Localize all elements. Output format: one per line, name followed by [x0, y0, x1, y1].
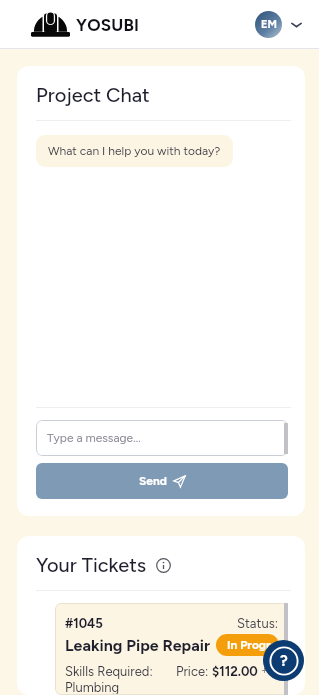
- button[interactable]: Help: [263, 640, 304, 681]
- staticText: Your Tickets: [36, 553, 147, 577]
- button[interactable]: YOSUBI: [31, 12, 140, 37]
- staticText: Send: [139, 474, 167, 488]
- staticText: Skills Required:: [65, 664, 153, 680]
- button[interactable]: #1045: [55, 603, 288, 695]
- staticText: EM: [261, 18, 277, 31]
- staticText: Project Chat: [36, 83, 150, 107]
- button[interactable]: Send: [36, 463, 288, 499]
- staticText: Plumbing: [65, 680, 120, 695]
- staticText: + tax: [261, 664, 279, 677]
- button[interactable]: EM: [255, 11, 302, 38]
- button[interactable]: Type a message...: [36, 420, 288, 456]
- staticText: Status:: [237, 616, 279, 632]
- staticText: Leaking Pipe Repair: [65, 636, 211, 655]
- staticText: YOSUBI: [76, 15, 140, 35]
- staticText: What can I help you with today?: [48, 144, 221, 158]
- staticText: Type a message...: [47, 431, 141, 445]
- staticText: In Progress: [227, 638, 268, 652]
- staticText: Price:: [176, 664, 212, 680]
- staticText: #1045: [65, 616, 103, 632]
- button[interactable]: Info: [156, 558, 171, 573]
- staticText: $112.00: [212, 664, 258, 680]
- staticText: ?: [280, 652, 288, 670]
